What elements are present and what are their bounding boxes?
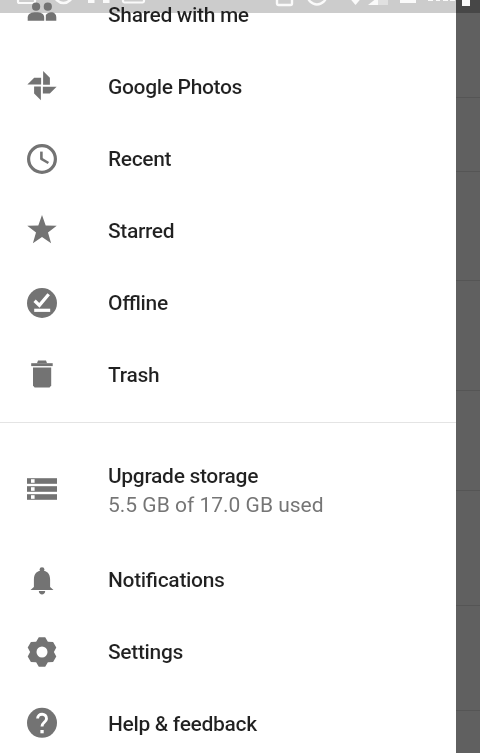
staticText: Google Photos [108, 75, 242, 100]
staticText: 5.5 GB of 17.0 GB used [108, 493, 324, 518]
staticText: Starred [108, 219, 175, 244]
button[interactable]: Trash [0, 339, 456, 411]
button[interactable]: Shared with me [0, 0, 456, 51]
staticText: Trash [108, 363, 160, 388]
staticText: Recent [108, 147, 172, 172]
button[interactable]: Upgrade storage [0, 441, 456, 537]
button[interactable]: Notifications [0, 544, 456, 616]
staticText: Offline [108, 291, 168, 316]
staticText: Upgrade storage [108, 464, 259, 489]
staticText: Shared with me [108, 3, 249, 28]
button[interactable]: Recent [0, 123, 456, 195]
button[interactable]: Offline [0, 267, 456, 339]
button[interactable]: Google Photos [0, 51, 456, 123]
button[interactable]: Starred [0, 195, 456, 267]
button[interactable]: Settings [0, 616, 456, 688]
staticText: Notifications [108, 568, 225, 593]
button[interactable]: Help & feedback [0, 688, 456, 753]
staticText: Settings [108, 640, 183, 665]
staticText: Help & feedback [108, 712, 257, 737]
